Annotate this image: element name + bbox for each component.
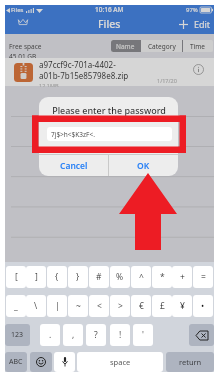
button[interactable]: * bbox=[152, 266, 172, 288]
button[interactable]: Category bbox=[141, 40, 182, 52]
button[interactable]: Backspace bbox=[189, 324, 214, 346]
staticText: Edit bbox=[194, 18, 211, 30]
staticText: _ bbox=[14, 300, 18, 312]
staticText: space bbox=[110, 357, 131, 367]
staticText: ^ bbox=[139, 271, 144, 283]
button[interactable]: \ bbox=[26, 295, 46, 317]
button[interactable]: ¥ bbox=[172, 295, 192, 317]
staticText: Files bbox=[11, 6, 24, 14]
staticText: Category bbox=[148, 42, 176, 51]
staticText: # bbox=[96, 271, 102, 283]
button[interactable]: ' bbox=[133, 324, 153, 346]
button[interactable]: , bbox=[63, 324, 83, 346]
staticText: Time bbox=[190, 42, 206, 51]
button[interactable]: . bbox=[40, 324, 60, 346]
staticText: £ bbox=[160, 300, 165, 312]
button[interactable]: Microphone bbox=[54, 352, 75, 372]
button[interactable]: Edit bbox=[194, 18, 211, 30]
staticText: ] bbox=[35, 271, 38, 283]
staticText: 45.01 GB bbox=[9, 52, 37, 61]
staticText: Files bbox=[98, 17, 121, 31]
button[interactable]: [ bbox=[6, 266, 26, 288]
staticText: a01b-7b15e85798e8.zip bbox=[39, 70, 129, 81]
button[interactable]: ~ bbox=[68, 295, 88, 317]
staticText: ! bbox=[119, 329, 122, 341]
button[interactable]: ] bbox=[26, 266, 46, 288]
button[interactable]: space bbox=[77, 352, 163, 372]
button[interactable]: % bbox=[110, 266, 130, 288]
button[interactable]: 123 bbox=[5, 324, 30, 346]
staticText: . bbox=[49, 329, 52, 341]
staticText: + bbox=[180, 271, 185, 283]
button[interactable]: } bbox=[68, 266, 88, 288]
button[interactable]: Name bbox=[111, 40, 140, 52]
button[interactable]: ? bbox=[86, 324, 106, 346]
button[interactable]: _ bbox=[6, 295, 26, 317]
button[interactable]: Info bbox=[193, 64, 204, 75]
staticText: = bbox=[201, 271, 206, 283]
staticText: Please enter the password bbox=[52, 104, 166, 116]
button[interactable]: ^ bbox=[131, 266, 151, 288]
button[interactable]: { bbox=[47, 266, 67, 288]
staticText: [ bbox=[15, 271, 18, 283]
staticText: 7j$>h<$K3zF<. bbox=[51, 130, 95, 139]
staticText: 1/17/20 bbox=[157, 77, 177, 84]
button[interactable]: € bbox=[131, 295, 151, 317]
staticText: * bbox=[160, 271, 165, 283]
staticText: < bbox=[97, 300, 102, 312]
staticText: { bbox=[55, 271, 59, 283]
staticText: a97ccf9c-701a-4402- bbox=[39, 59, 116, 70]
button[interactable]: > bbox=[110, 295, 130, 317]
staticText: ? bbox=[94, 329, 98, 341]
button[interactable]: £ bbox=[152, 295, 172, 317]
staticText: Cancel bbox=[60, 160, 88, 172]
staticText: 10:16 AM bbox=[95, 5, 124, 14]
staticText: 123 bbox=[11, 330, 24, 340]
staticText: • bbox=[201, 300, 205, 312]
button[interactable]: Add bbox=[178, 19, 189, 30]
button[interactable]: Cancel bbox=[39, 155, 108, 176]
staticText: return bbox=[179, 357, 202, 367]
button[interactable]: ABC bbox=[5, 352, 27, 372]
button[interactable]: return bbox=[166, 352, 214, 372]
staticText: } bbox=[76, 271, 80, 283]
staticText: ¥ bbox=[180, 300, 185, 312]
button[interactable]: + bbox=[172, 266, 192, 288]
staticText: , bbox=[72, 329, 75, 341]
button[interactable]: Crown bbox=[18, 19, 28, 25]
staticText: € bbox=[139, 300, 144, 312]
staticText: ~ bbox=[76, 300, 81, 312]
staticText: OK bbox=[137, 160, 150, 172]
button[interactable]: # bbox=[89, 266, 109, 288]
button[interactable]: ! bbox=[110, 324, 130, 346]
staticText: Free space bbox=[9, 42, 42, 51]
staticText: 12.1MB bbox=[39, 82, 59, 87]
staticText: > bbox=[118, 300, 123, 312]
button[interactable]: = bbox=[193, 266, 213, 288]
button[interactable]: Time bbox=[183, 40, 213, 52]
button[interactable]: • bbox=[193, 295, 213, 317]
button[interactable]: < bbox=[89, 295, 109, 317]
staticText: 97% bbox=[186, 6, 198, 14]
button[interactable]: | bbox=[47, 295, 67, 317]
button[interactable]: Emoji bbox=[30, 352, 52, 372]
staticText: Name bbox=[116, 42, 135, 51]
staticText: | bbox=[55, 300, 60, 312]
staticText: % bbox=[116, 271, 124, 283]
button[interactable]: OK bbox=[109, 155, 178, 176]
staticText: ' bbox=[142, 329, 144, 341]
staticText: \ bbox=[34, 300, 38, 312]
staticText: ABC bbox=[9, 357, 23, 367]
